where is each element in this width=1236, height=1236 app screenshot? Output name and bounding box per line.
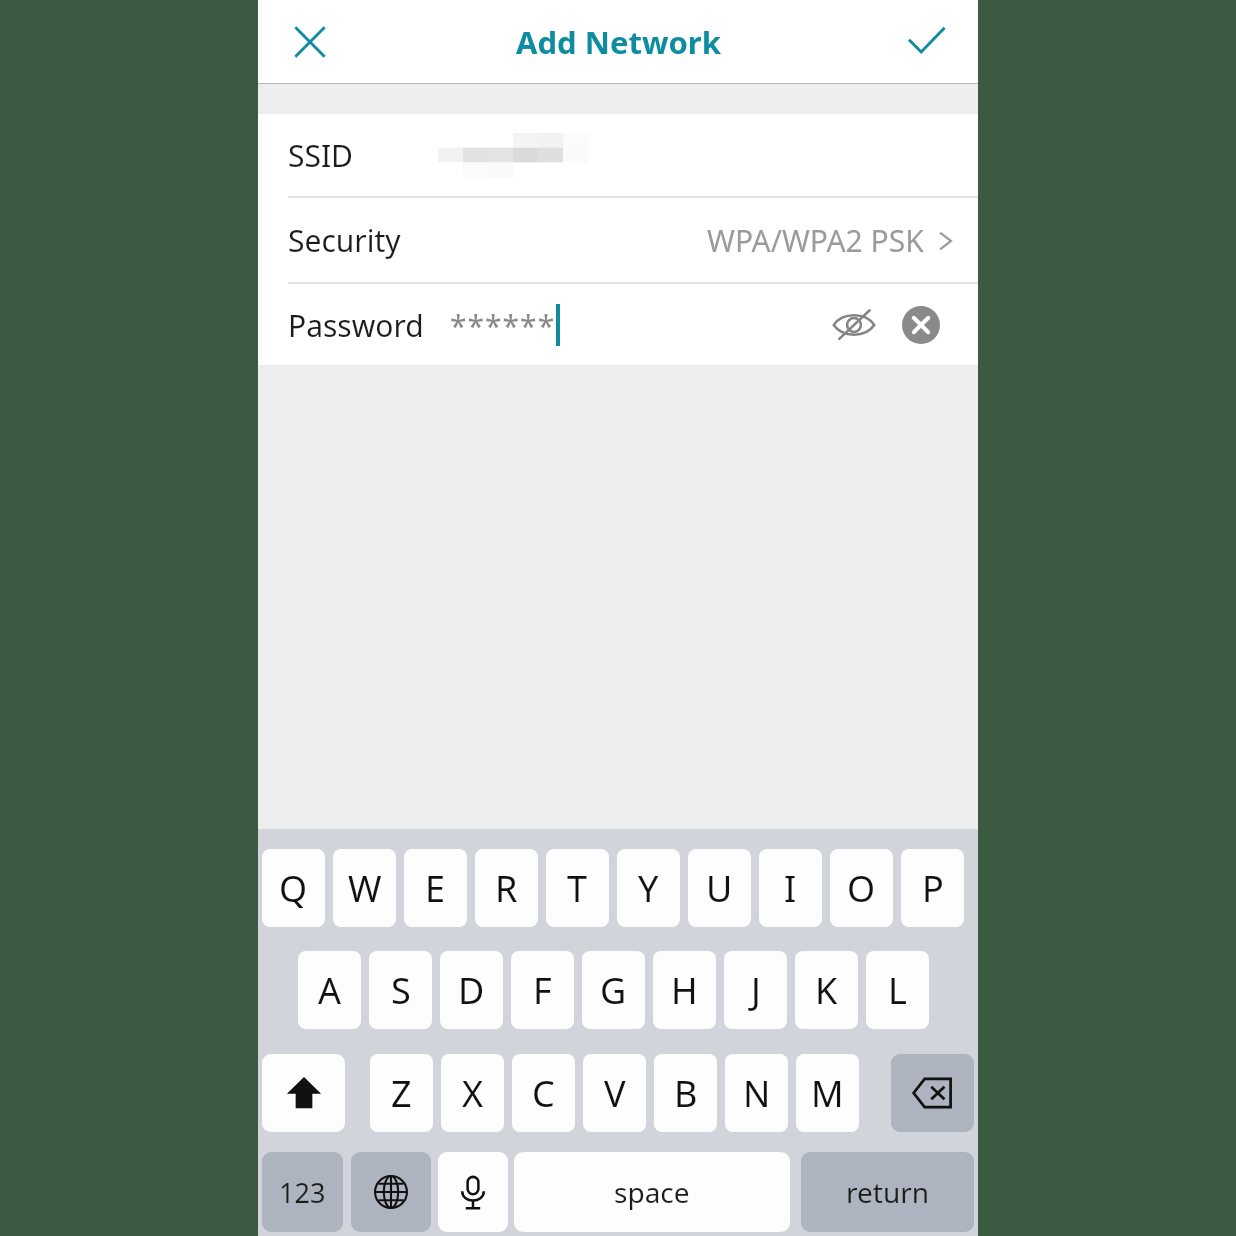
button[interactable]: F	[511, 951, 574, 1029]
staticText: Q	[279, 864, 308, 913]
button[interactable]: O	[830, 849, 893, 927]
staticText: O	[847, 864, 876, 913]
staticText: G	[600, 966, 627, 1015]
button[interactable]: N	[725, 1054, 788, 1132]
button[interactable]: A	[298, 951, 361, 1029]
button[interactable]: D	[440, 951, 503, 1029]
button[interactable]: I	[759, 849, 822, 927]
button[interactable]: Change language	[351, 1152, 431, 1232]
staticText: Y	[638, 864, 659, 913]
staticText: V	[604, 1069, 626, 1118]
staticText: S	[391, 966, 411, 1015]
button[interactable]: J	[724, 951, 787, 1029]
staticText: I	[784, 864, 797, 913]
button[interactable]: H	[653, 951, 716, 1029]
staticText: U	[706, 864, 733, 913]
staticText: P	[922, 864, 944, 913]
button[interactable]: S	[369, 951, 432, 1029]
button[interactable]: G	[582, 951, 645, 1029]
staticText: Password	[288, 305, 424, 346]
button[interactable]: K	[795, 951, 858, 1029]
button[interactable]: Password	[258, 284, 978, 365]
button[interactable]: L	[866, 951, 929, 1029]
button[interactable]: V	[583, 1054, 646, 1132]
staticText: J	[751, 966, 761, 1015]
button[interactable]: return	[801, 1152, 974, 1232]
staticText: space	[614, 1173, 690, 1211]
staticText: D	[458, 966, 485, 1015]
staticText: F	[533, 966, 552, 1015]
button[interactable]: Clear password	[898, 302, 944, 348]
staticText: X	[462, 1069, 484, 1118]
staticText: E	[425, 864, 446, 913]
button[interactable]: M	[796, 1054, 859, 1132]
staticText: return	[846, 1173, 930, 1211]
button[interactable]: Y	[617, 849, 680, 927]
button[interactable]: U	[688, 849, 751, 927]
button[interactable]: C	[512, 1054, 575, 1132]
button[interactable]: W	[333, 849, 396, 927]
button[interactable]: B	[654, 1054, 717, 1132]
staticText: M	[811, 1069, 844, 1118]
button[interactable]: P	[901, 849, 964, 927]
button[interactable]: Voice input	[438, 1152, 508, 1232]
staticText: Add Network	[516, 21, 721, 63]
staticText: N	[743, 1069, 771, 1118]
staticText: 123	[279, 1174, 326, 1211]
button[interactable]: R	[475, 849, 538, 927]
staticText: K	[815, 966, 838, 1015]
staticText: H	[671, 966, 698, 1015]
button[interactable]: space	[514, 1152, 790, 1232]
button[interactable]: Confirm	[888, 4, 964, 80]
button[interactable]: Close	[272, 4, 348, 80]
button[interactable]: Security	[258, 198, 978, 282]
staticText: Z	[391, 1069, 412, 1118]
button[interactable]: Backspace	[891, 1054, 974, 1132]
staticText: W	[348, 864, 382, 913]
button[interactable]: SSID	[258, 114, 978, 196]
staticText: Security	[288, 220, 401, 261]
staticText: C	[532, 1069, 555, 1118]
staticText: T	[567, 864, 588, 913]
staticText: ******	[450, 305, 556, 346]
staticText: B	[674, 1069, 698, 1118]
button[interactable]: X	[441, 1054, 504, 1132]
button[interactable]: E	[404, 849, 467, 927]
staticText: A	[318, 966, 342, 1015]
button[interactable]: Show password	[826, 297, 882, 353]
button[interactable]: Z	[370, 1054, 433, 1132]
staticText: SSID	[288, 135, 354, 176]
staticText: R	[495, 864, 518, 913]
staticText: L	[888, 966, 907, 1015]
button[interactable]: Shift	[262, 1054, 345, 1132]
button[interactable]: Q	[262, 849, 325, 927]
staticText: WPA/WPA2 PSK	[707, 220, 924, 261]
button[interactable]: T	[546, 849, 609, 927]
button[interactable]: 123	[262, 1152, 343, 1232]
